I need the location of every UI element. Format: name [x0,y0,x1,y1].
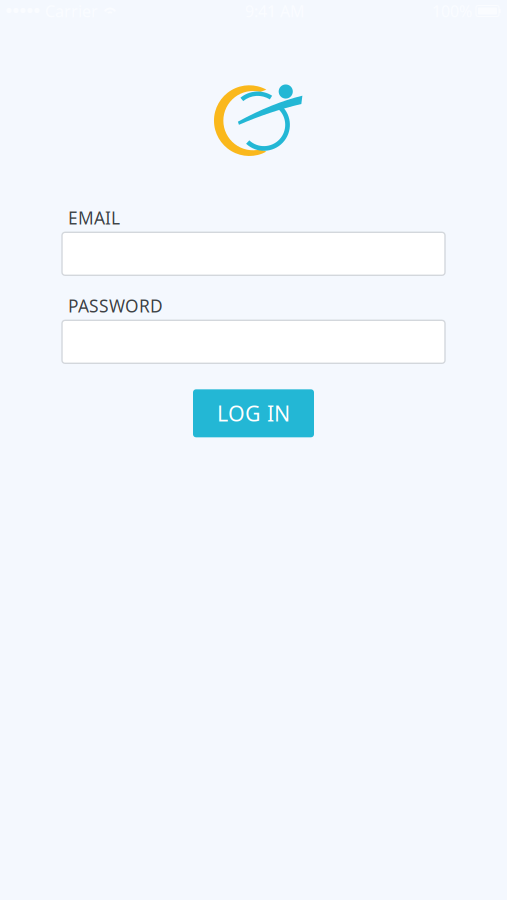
button[interactable]: Password [62,320,445,363]
staticText: LOG IN [217,399,290,427]
button[interactable]: LOG IN [193,389,314,437]
staticText: EMAIL [68,206,120,229]
staticText: PASSWORD [68,294,163,317]
button[interactable]: Email [62,232,445,275]
